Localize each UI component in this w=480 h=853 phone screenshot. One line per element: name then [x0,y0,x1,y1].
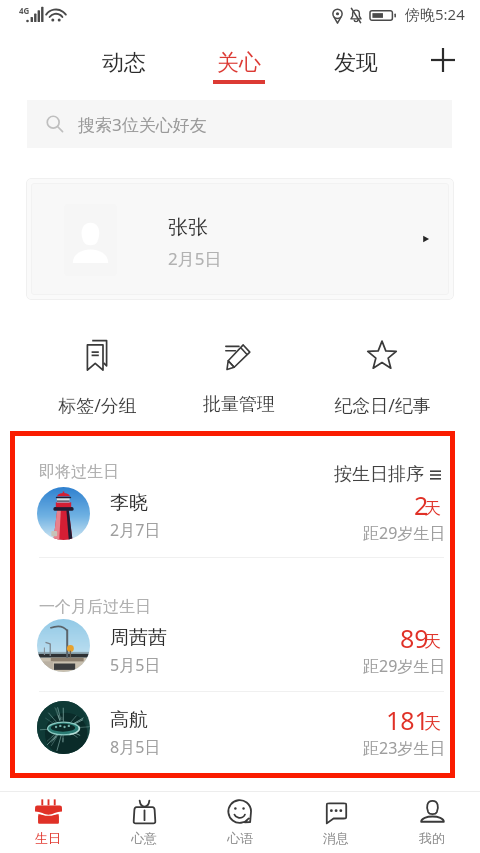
staticText: 纪念日/纪事 [334,393,431,418]
button[interactable]: 李晓 [37,481,446,547]
staticText: 周茜茜 [110,626,167,650]
staticText: 2月7日 [110,519,161,541]
staticText: 5月5日 [110,654,161,676]
staticText: 4G [19,5,30,16]
button[interactable]: 添加 [419,36,466,83]
staticText: 标签/分组 [58,393,137,418]
staticText: 天 [424,713,441,734]
button[interactable]: 周茜茜 [37,613,446,679]
staticText: 张张 [168,215,208,240]
button[interactable]: 张张 [26,178,454,300]
staticText: 心语 [227,830,253,846]
staticText: 高航 [110,708,148,732]
staticText: 8月5日 [110,736,161,758]
staticText: 搜索3位关心好友 [78,113,207,136]
button[interactable]: 心意 [96,792,192,853]
staticText: 距23岁生日 [363,737,446,759]
staticText: 即将过生日 [39,462,119,482]
staticText: 距29岁生日 [363,655,446,677]
button[interactable]: 标签/分组 [37,330,157,425]
button[interactable]: 高航 [37,695,446,761]
button[interactable]: 消息 [288,792,384,853]
staticText: 一个月后过生日 [39,597,151,617]
button[interactable]: 按生日排序 [331,463,457,485]
button[interactable]: 批量管理 [179,330,299,425]
staticText: 动态 [102,49,146,77]
staticText: 天 [424,498,441,519]
button[interactable]: 我的 [384,792,480,853]
staticText: 天 [424,631,441,652]
staticText: 李晓 [110,491,148,515]
staticText: 我的 [419,830,445,846]
staticText: 关心 [217,49,261,77]
staticText: 生日 [35,830,61,846]
staticText: 按生日排序 [334,463,424,485]
button[interactable]: 生日 [0,792,96,853]
button[interactable]: 纪念日/纪事 [322,330,442,425]
staticText: 89 [400,621,429,655]
button[interactable]: 心语 [192,792,288,853]
staticText: 批量管理 [203,393,275,416]
button[interactable]: 发现 [318,40,394,88]
button[interactable]: 搜索3位关心好友 [27,100,452,148]
button[interactable]: 动态 [86,40,162,88]
button[interactable]: 关心 [201,40,277,88]
staticText: 发现 [334,49,378,77]
staticText: 距29岁生日 [363,522,446,544]
staticText: 2 [414,488,429,522]
staticText: 2月5日 [168,247,222,270]
staticText: 消息 [323,830,349,846]
staticText: 心意 [131,830,157,846]
staticText: 181 [386,703,429,737]
staticText: 傍晚5:24 [405,4,465,24]
